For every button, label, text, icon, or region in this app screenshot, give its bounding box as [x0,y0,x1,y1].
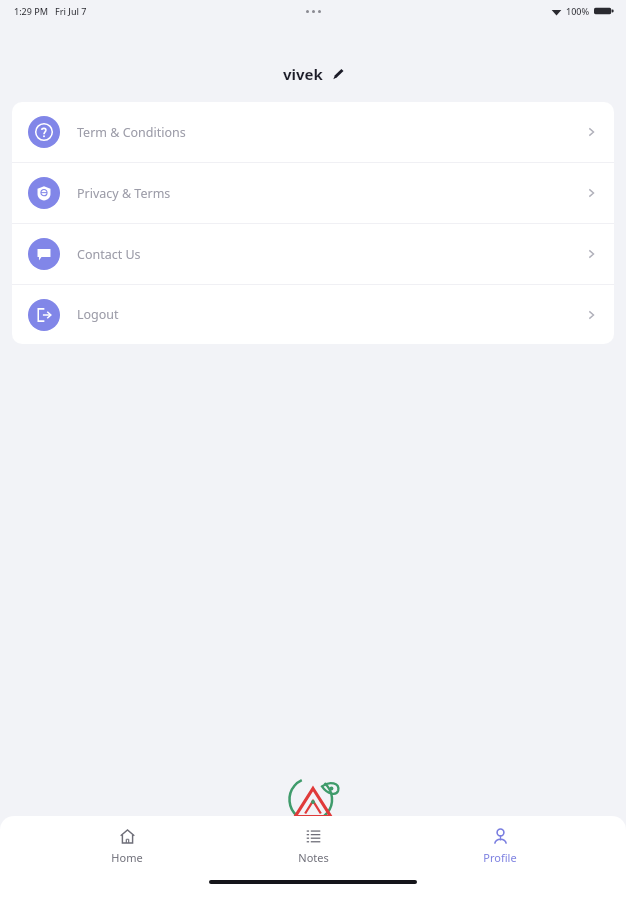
button[interactable]: Term & Conditions [12,102,614,162]
staticText: Fri Jul 7 [55,5,87,17]
staticText: Term & Conditions [77,124,186,141]
staticText: Home [111,850,143,865]
button[interactable]: Privacy & Terms [12,163,614,223]
button[interactable]: Logout [12,285,614,344]
staticText: 100% [566,5,590,17]
staticText: Privacy & Terms [77,185,171,202]
button[interactable]: Notes [253,824,373,869]
button[interactable]: Contact Us [12,224,614,284]
staticText: Notes [298,850,329,865]
staticText: 1:29 PM [14,5,48,17]
staticText: vivek [283,64,323,84]
button[interactable]: vivek [275,60,352,88]
button[interactable]: Profile [440,824,560,869]
staticText: Profile [483,850,517,865]
staticText: Contact Us [77,246,141,263]
button[interactable]: Home [67,824,187,869]
staticText: Logout [77,306,119,323]
other: Edit name [331,68,344,81]
